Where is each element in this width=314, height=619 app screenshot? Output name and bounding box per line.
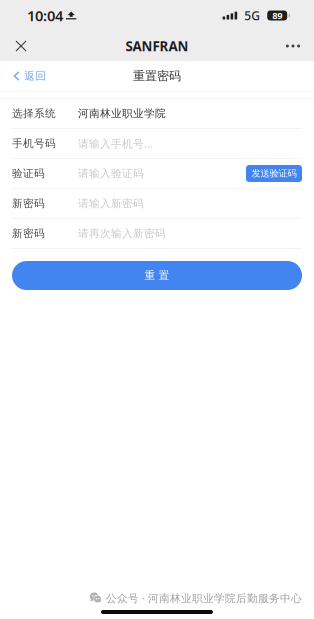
- staticText: SANFRAN: [125, 37, 188, 55]
- staticText: 手机号码: [12, 137, 56, 150]
- staticText: 返回: [24, 69, 46, 82]
- staticText: 新密码: [12, 227, 45, 240]
- staticText: 5G: [244, 7, 260, 23]
- staticText: 选择系统: [12, 107, 56, 120]
- staticText: 请输入新密码: [78, 197, 144, 210]
- button[interactable]: Close: [0, 31, 42, 61]
- staticText: 89: [272, 9, 282, 22]
- button[interactable]: More: [272, 31, 314, 61]
- staticText: 新密码: [12, 197, 45, 210]
- staticText: 请再次输入新密码: [78, 227, 166, 240]
- staticText: 发送验证码: [251, 168, 296, 179]
- staticText: 验证码: [12, 167, 45, 180]
- staticText: 重置密码: [133, 69, 181, 83]
- button[interactable]: 重 置: [12, 261, 302, 290]
- staticText: 河南林业职业学院: [78, 107, 166, 120]
- staticText: 公众号 · 河南林业职业学院后勤服务中心: [106, 591, 302, 605]
- button[interactable]: 发送验证码: [246, 165, 302, 182]
- staticText: 10:04: [27, 6, 63, 25]
- staticText: 请输入手机号...: [78, 136, 153, 151]
- staticText: 请输入验证码: [78, 167, 144, 180]
- button[interactable]: 返回: [0, 60, 56, 92]
- staticText: 重 置: [144, 269, 169, 282]
